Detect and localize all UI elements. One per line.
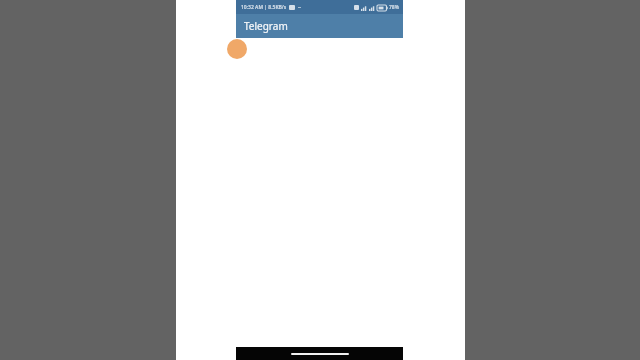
staticText: 10:32 AM | 8.5KB/s — [241, 4, 287, 11]
staticText: 78% — [389, 4, 399, 11]
button[interactable]: Chat avatar — [227, 39, 247, 59]
staticText: Telegram — [244, 19, 288, 33]
